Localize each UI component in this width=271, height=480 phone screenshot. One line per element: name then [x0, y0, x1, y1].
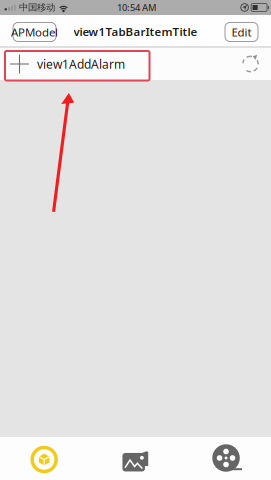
- button[interactable]: Videos: [181, 437, 271, 480]
- staticText: view1TabBarItemTitle: [73, 24, 197, 39]
- button[interactable]: Photos: [90, 437, 181, 480]
- button[interactable]: Models: [0, 437, 90, 480]
- button[interactable]: Edit: [225, 22, 258, 41]
- staticText: 中国移动: [19, 2, 55, 13]
- staticText: view1AddAlarm: [37, 56, 125, 72]
- staticText: Edit: [231, 24, 251, 40]
- staticText: 10:54 AM: [117, 1, 157, 14]
- staticText: APModel: [11, 24, 58, 40]
- button[interactable]: view1AddAlarm: [0, 48, 271, 80]
- button[interactable]: APModel: [13, 22, 56, 41]
